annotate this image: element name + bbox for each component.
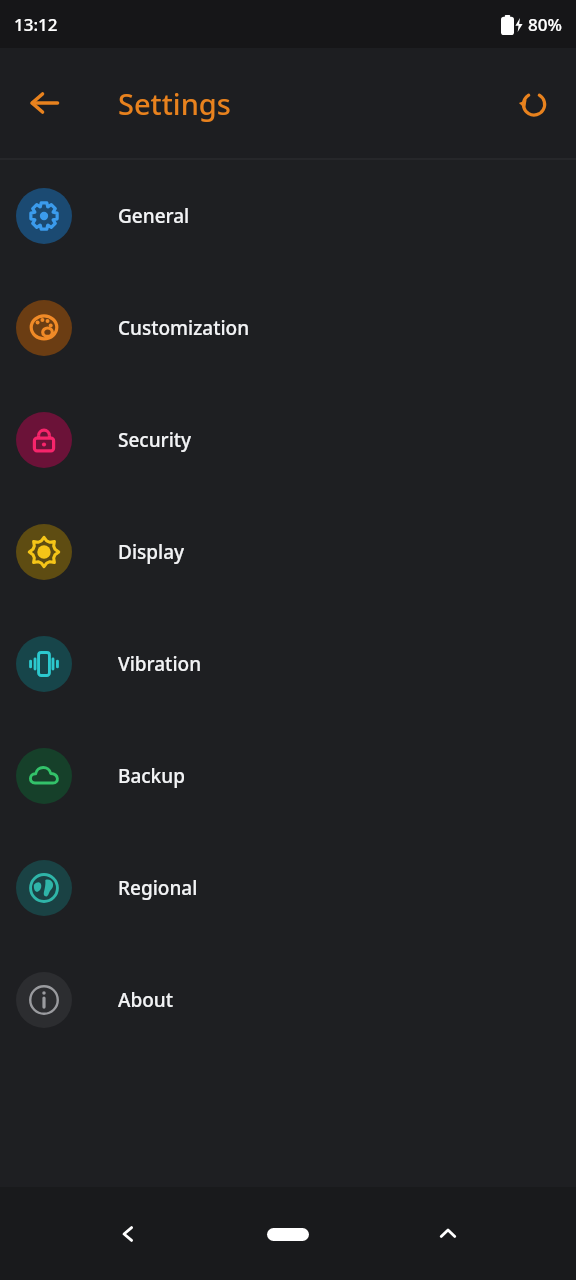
- button[interactable]: Customization: [0, 272, 576, 384]
- button[interactable]: Backup: [0, 720, 576, 832]
- staticText: Display: [118, 539, 185, 565]
- button[interactable]: About: [0, 944, 576, 1056]
- staticText: Vibration: [118, 651, 202, 677]
- staticText: 80%: [528, 13, 562, 36]
- button[interactable]: Back: [14, 73, 74, 133]
- button[interactable]: Regional: [0, 832, 576, 944]
- button[interactable]: Reset: [504, 73, 564, 133]
- staticText: Regional: [118, 875, 198, 901]
- staticText: Security: [118, 427, 192, 453]
- staticText: Customization: [118, 315, 250, 341]
- staticText: Settings: [118, 84, 231, 123]
- button[interactable]: Display: [0, 496, 576, 608]
- button[interactable]: Recent apps: [416, 1202, 480, 1266]
- staticText: General: [118, 203, 190, 229]
- button[interactable]: Vibration: [0, 608, 576, 720]
- button[interactable]: General: [0, 160, 576, 272]
- staticText: 13:12: [14, 13, 58, 36]
- button[interactable]: Security: [0, 384, 576, 496]
- staticText: About: [118, 987, 174, 1013]
- button[interactable]: Back: [96, 1202, 160, 1266]
- staticText: Backup: [118, 763, 185, 789]
- button[interactable]: Home: [256, 1202, 320, 1266]
